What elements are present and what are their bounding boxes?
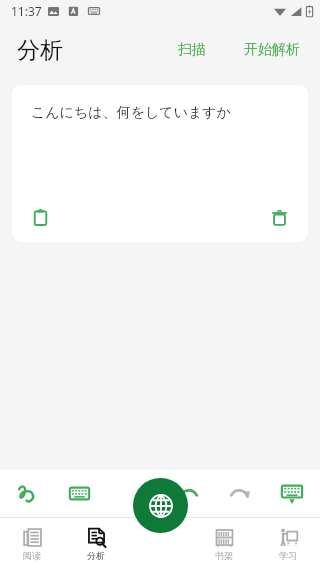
staticText: 分析: [17, 36, 63, 65]
button[interactable]: Delete: [263, 201, 296, 234]
button[interactable]: 扫描: [170, 35, 214, 65]
staticText: 开始解析: [244, 41, 300, 59]
staticText: 扫描: [178, 41, 206, 59]
button[interactable]: 阅读: [0, 518, 64, 569]
staticText: 书架: [215, 550, 233, 561]
staticText: 学习: [279, 550, 297, 561]
button[interactable]: Redo: [214, 470, 266, 517]
button[interactable]: Keyboard options: [266, 470, 318, 517]
button[interactable]: こんにちは、何をしていますか: [12, 85, 308, 242]
button[interactable]: 开始解析: [236, 35, 308, 65]
button[interactable]: Undo: [162, 470, 214, 517]
button[interactable]: Handwriting: [2, 470, 53, 517]
button[interactable]: Translate: [133, 478, 188, 533]
button[interactable]: 书架: [192, 518, 256, 569]
staticText: 11:37: [11, 3, 42, 19]
staticText: こんにちは、何をしていますか: [31, 104, 231, 122]
button[interactable]: Keyboard: [53, 470, 105, 517]
button[interactable]: Copy: [24, 201, 57, 234]
button[interactable]: 学习: [256, 518, 320, 569]
staticText: 阅读: [23, 550, 41, 561]
staticText: 分析: [87, 550, 105, 561]
button[interactable]: 分析: [64, 518, 128, 569]
